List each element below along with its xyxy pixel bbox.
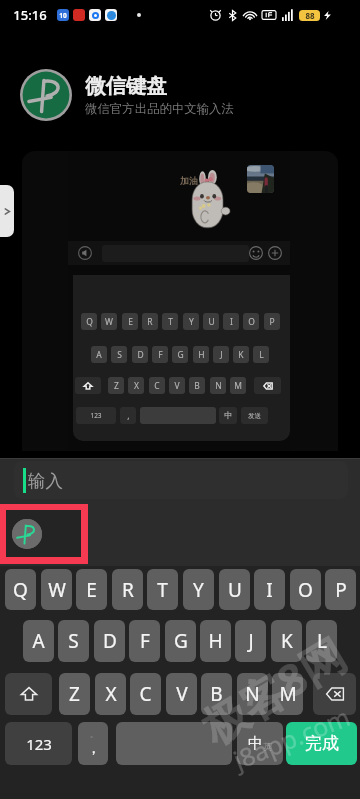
button[interactable]: L bbox=[306, 620, 337, 662]
button[interactable]: 输入 bbox=[14, 461, 348, 499]
staticText: T bbox=[157, 577, 168, 603]
button[interactable]: WeChat keyboard toolbar item bbox=[6, 510, 81, 557]
staticText: 123 bbox=[26, 734, 52, 754]
staticText: 加油 bbox=[180, 175, 198, 186]
staticText: A bbox=[96, 349, 102, 361]
staticText: W bbox=[105, 316, 113, 328]
staticText: , bbox=[127, 410, 130, 422]
staticText: 英 bbox=[263, 741, 272, 752]
staticText: 123 bbox=[90, 411, 102, 420]
staticText: L bbox=[317, 628, 327, 654]
button[interactable]: Backspace bbox=[313, 673, 356, 715]
staticText: I bbox=[266, 577, 273, 603]
button[interactable]: P bbox=[325, 569, 356, 610]
staticText: C bbox=[154, 380, 160, 392]
staticText: 中 bbox=[224, 410, 233, 421]
staticText: O bbox=[248, 316, 255, 328]
staticText: Q bbox=[86, 316, 93, 328]
button[interactable]: V bbox=[166, 673, 197, 715]
staticText: W bbox=[48, 577, 66, 603]
button[interactable]: E bbox=[76, 569, 107, 610]
button[interactable]: A bbox=[23, 620, 54, 662]
staticText: 完成 bbox=[305, 733, 339, 754]
staticText: B bbox=[210, 681, 223, 707]
staticText: N bbox=[245, 681, 260, 707]
button[interactable]: Y bbox=[183, 569, 214, 610]
staticText: O bbox=[298, 577, 313, 603]
staticText: A bbox=[32, 628, 45, 654]
button[interactable]: X bbox=[95, 673, 126, 715]
button[interactable]: 123 bbox=[5, 722, 72, 765]
staticText: E bbox=[86, 577, 97, 603]
button[interactable]: N bbox=[237, 673, 268, 715]
staticText: 发送 bbox=[248, 412, 261, 420]
button[interactable]: T bbox=[147, 569, 178, 610]
button[interactable]: J bbox=[235, 620, 266, 662]
staticText: D bbox=[103, 628, 117, 654]
staticText: F bbox=[140, 628, 150, 654]
button[interactable]: O bbox=[290, 569, 321, 610]
staticText: V bbox=[176, 681, 188, 707]
staticText: G bbox=[177, 349, 184, 361]
button[interactable]: I bbox=[254, 569, 285, 610]
staticText: C bbox=[139, 681, 152, 707]
button[interactable]: B bbox=[201, 673, 232, 715]
button[interactable]: Z bbox=[59, 673, 90, 715]
button[interactable]: K bbox=[271, 620, 302, 662]
staticText: Y bbox=[193, 577, 204, 603]
button[interactable]: 。 bbox=[78, 722, 108, 765]
staticText: T bbox=[168, 316, 173, 328]
staticText: K bbox=[281, 628, 293, 654]
button[interactable]: H bbox=[200, 620, 231, 662]
staticText: Y bbox=[189, 316, 194, 328]
staticText: F bbox=[158, 349, 163, 361]
staticText: X bbox=[105, 681, 117, 707]
staticText: U bbox=[208, 316, 215, 328]
staticText: Z bbox=[69, 681, 80, 707]
button[interactable]: G bbox=[165, 620, 196, 662]
staticText: J bbox=[220, 349, 223, 361]
staticText: ， bbox=[86, 739, 101, 758]
staticText: K bbox=[238, 349, 244, 361]
staticText: B bbox=[194, 380, 200, 392]
staticText: J bbox=[248, 628, 254, 654]
button[interactable]: Q bbox=[5, 569, 36, 610]
button[interactable]: U bbox=[219, 569, 250, 610]
staticText: R bbox=[122, 577, 134, 603]
staticText: M bbox=[234, 380, 242, 392]
staticText: H bbox=[208, 628, 223, 654]
staticText: 极客8网 bbox=[190, 623, 356, 756]
staticText: G bbox=[174, 628, 188, 654]
staticText: N bbox=[215, 380, 222, 392]
button[interactable]: M bbox=[272, 673, 303, 715]
button[interactable]: S bbox=[58, 620, 89, 662]
staticText: 。 bbox=[90, 729, 98, 739]
staticText: P bbox=[335, 577, 347, 603]
staticText: S bbox=[68, 628, 79, 654]
staticText: R bbox=[147, 316, 153, 328]
staticText: 输入 bbox=[28, 470, 63, 492]
staticText: L bbox=[259, 349, 264, 361]
staticText: H bbox=[198, 349, 205, 361]
staticText: 微信官方出品的中文输入法 bbox=[85, 101, 234, 117]
staticText: S bbox=[117, 349, 122, 361]
button[interactable]: D bbox=[94, 620, 125, 662]
button[interactable]: Shift bbox=[5, 673, 52, 715]
staticText: P bbox=[269, 316, 275, 328]
staticText: D bbox=[137, 349, 144, 361]
staticText: I bbox=[230, 316, 233, 328]
staticText: Z bbox=[114, 380, 119, 392]
staticText: 中 bbox=[248, 734, 263, 753]
staticText: E bbox=[128, 316, 133, 328]
button[interactable]: W bbox=[41, 569, 72, 610]
staticText: Q bbox=[13, 577, 28, 603]
button[interactable]: 完成 bbox=[286, 722, 357, 765]
button[interactable]: Space bbox=[116, 722, 232, 765]
button[interactable]: C bbox=[130, 673, 161, 715]
staticText: U bbox=[228, 577, 242, 603]
button[interactable]: Switch Chinese English bbox=[237, 722, 283, 765]
button[interactable]: F bbox=[129, 620, 160, 662]
button[interactable]: Back bbox=[0, 185, 14, 237]
button[interactable]: R bbox=[112, 569, 143, 610]
staticText: 88 bbox=[305, 10, 315, 21]
